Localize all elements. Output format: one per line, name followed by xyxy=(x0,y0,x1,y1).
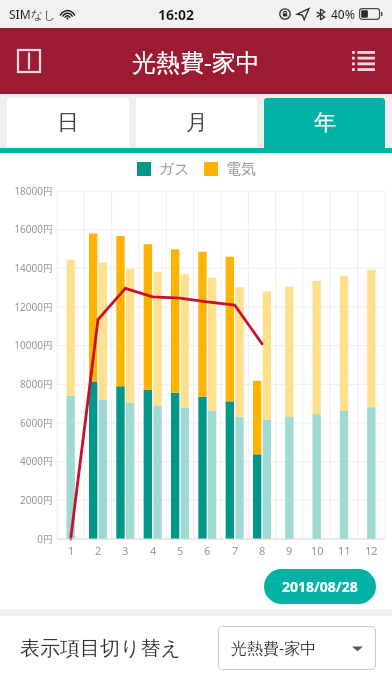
staticText: SIMなし xyxy=(9,6,56,22)
staticText: 18000円 xyxy=(14,184,53,198)
staticText: 年 xyxy=(314,109,336,137)
button[interactable]: 2018/08/28 xyxy=(264,569,376,604)
staticText: 16:02 xyxy=(158,5,194,24)
staticText: 5 xyxy=(177,543,184,558)
staticText: 2 xyxy=(95,543,102,558)
staticText: 光熱費-家中 xyxy=(132,45,260,78)
staticText: 7 xyxy=(232,543,239,558)
staticText: 2000円 xyxy=(20,493,53,507)
staticText: 2018/08/28 xyxy=(282,577,358,596)
button[interactable]: 年 xyxy=(264,98,385,148)
button[interactable]: 日 xyxy=(7,98,129,148)
staticText: 10 xyxy=(311,543,324,558)
staticText: 8000円 xyxy=(20,377,53,391)
staticText: 電気 xyxy=(226,160,256,179)
staticText: 40% xyxy=(331,6,355,22)
button[interactable]: 月 xyxy=(136,98,257,148)
staticText: 12000円 xyxy=(14,300,53,314)
staticText: ガス xyxy=(159,160,190,179)
staticText: 0円 xyxy=(37,532,53,546)
staticText: 日 xyxy=(57,109,79,137)
staticText: 10000円 xyxy=(14,338,53,352)
staticText: 8 xyxy=(259,543,266,558)
staticText: 12 xyxy=(365,543,378,558)
staticText: 4 xyxy=(150,543,157,558)
staticText: 月 xyxy=(186,109,208,137)
staticText: 9 xyxy=(286,543,293,558)
staticText: 1 xyxy=(68,543,75,558)
staticText: 14000円 xyxy=(14,261,53,275)
staticText: 6 xyxy=(204,543,211,558)
staticText: 16000円 xyxy=(14,222,53,236)
staticText: 3 xyxy=(122,543,129,558)
staticText: 表示項目切り替え xyxy=(20,636,181,661)
staticText: 光熱費-家中 xyxy=(231,637,317,659)
staticText: 4000円 xyxy=(20,454,53,468)
staticText: 11 xyxy=(338,543,351,558)
button[interactable]: Menu xyxy=(340,38,386,84)
button[interactable]: 光熱費-家中 xyxy=(218,626,376,670)
button[interactable]: Split view xyxy=(6,38,52,84)
staticText: 6000円 xyxy=(20,416,53,430)
